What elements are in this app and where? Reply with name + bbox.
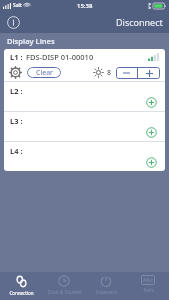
staticText: Display Lines [7,36,55,46]
button[interactable]: L1 : [4,49,165,81]
button[interactable]: Increase brightness [138,67,160,79]
staticText: L3 : [10,116,23,126]
staticText: Disconnect [116,16,163,28]
button[interactable]: Add display line L2 [145,96,158,108]
staticText: FDS-DISP 01-00010 [26,52,94,62]
other: Brightness [93,67,104,78]
button[interactable]: L3 : [4,112,165,141]
staticText: 8 [107,68,112,78]
staticText: Clear [36,68,53,78]
staticText: Clock & Counter [47,289,82,295]
button[interactable]: L2 : [4,82,165,111]
button[interactable]: Connection [0,272,43,300]
staticText: 15:38 [77,2,93,10]
staticText: Connection [9,290,34,296]
button[interactable]: Add display line L3 [145,126,158,138]
staticText: Salt [13,2,22,9]
staticText: Texts [143,287,154,293]
button[interactable]: Disconnect [110,13,169,31]
button[interactable]: L4 : [4,142,165,171]
button[interactable]: Abc [127,272,169,300]
button[interactable]: Clear [27,67,61,78]
staticText: Abc [143,276,154,284]
button[interactable]: Settings [9,66,22,79]
staticText: Stopwatch [95,289,118,295]
button[interactable]: Clock & Counter [43,272,85,300]
staticText: L1 : [10,52,23,62]
button[interactable]: Info [5,14,21,30]
staticText: L2 : [10,86,23,96]
button[interactable]: Stopwatch [85,272,127,300]
button[interactable]: Add display line L4 [145,156,158,168]
staticText: L4 : [10,146,23,156]
button[interactable]: Decrease brightness [116,67,137,79]
